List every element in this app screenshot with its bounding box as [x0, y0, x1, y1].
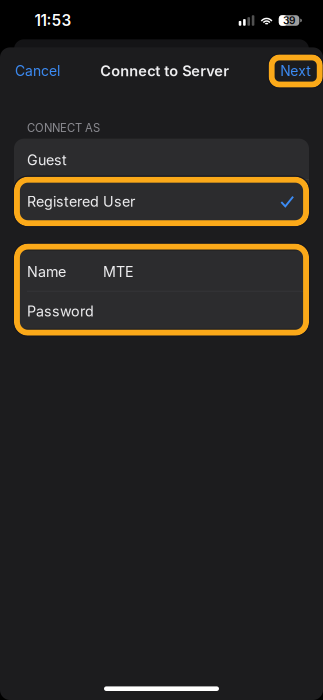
staticText: CONNECT AS	[27, 121, 100, 135]
staticText: Password	[27, 303, 94, 320]
button[interactable]: Registered User	[14, 180, 309, 223]
staticText: Registered User	[27, 193, 135, 210]
staticText: MTE	[103, 263, 134, 281]
staticText: Next	[280, 63, 311, 79]
staticText: 11:53	[34, 11, 71, 30]
staticText: Connect to Server	[100, 62, 229, 80]
staticText: 39	[283, 14, 295, 27]
button[interactable]: Password	[14, 291, 309, 329]
button[interactable]: Guest	[14, 139, 309, 179]
staticText: Guest	[27, 151, 67, 169]
button[interactable]: Name	[14, 251, 309, 291]
button[interactable]: Next	[272, 57, 323, 85]
button[interactable]: Cancel	[0, 54, 75, 88]
staticText: Name	[27, 263, 66, 281]
staticText: Cancel	[15, 63, 60, 79]
